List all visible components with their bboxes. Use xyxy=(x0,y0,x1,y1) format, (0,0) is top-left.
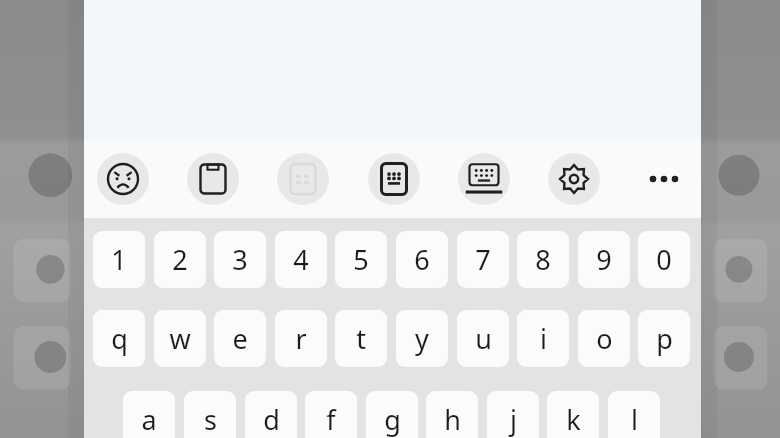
button[interactable]: q xyxy=(93,310,145,367)
staticText: p xyxy=(656,320,673,357)
button[interactable]: i xyxy=(517,310,569,367)
staticText: r xyxy=(295,320,307,357)
button[interactable]: More options xyxy=(638,153,690,205)
button[interactable]: d xyxy=(245,391,297,438)
staticText: h xyxy=(444,401,461,438)
button[interactable]: w xyxy=(154,310,206,367)
staticText: q xyxy=(111,320,128,357)
staticText: 6 xyxy=(414,241,430,278)
button[interactable]: j xyxy=(487,391,539,438)
button[interactable]: 5 xyxy=(335,231,387,288)
staticText: 3 xyxy=(232,241,248,278)
button[interactable]: 0 xyxy=(638,231,690,288)
staticText: o xyxy=(596,320,613,357)
button[interactable]: a xyxy=(123,391,175,438)
staticText: t xyxy=(356,320,366,357)
staticText: a xyxy=(141,401,157,438)
button[interactable]: 6 xyxy=(396,231,448,288)
staticText: g xyxy=(384,401,401,438)
button[interactable]: Clipboard xyxy=(187,153,239,205)
staticText: s xyxy=(204,401,217,438)
button[interactable]: h xyxy=(426,391,478,438)
button[interactable]: 8 xyxy=(517,231,569,288)
staticText: j xyxy=(510,401,517,438)
staticText: 4 xyxy=(293,241,309,278)
staticText: 5 xyxy=(353,241,369,278)
staticText: d xyxy=(263,401,280,438)
staticText: i xyxy=(540,320,547,357)
button[interactable]: f xyxy=(305,391,357,438)
staticText: 8 xyxy=(535,241,551,278)
button[interactable]: Translate xyxy=(277,153,329,205)
staticText: 2 xyxy=(172,241,188,278)
staticText: 1 xyxy=(111,241,127,278)
staticText: f xyxy=(326,401,336,438)
button[interactable]: 4 xyxy=(275,231,327,288)
button[interactable]: l xyxy=(608,391,660,438)
staticText: u xyxy=(475,320,492,357)
button[interactable]: g xyxy=(366,391,418,438)
button[interactable]: Keyboard mode xyxy=(458,153,510,205)
button[interactable]: 1 xyxy=(93,231,145,288)
button[interactable]: p xyxy=(638,310,690,367)
button[interactable]: 9 xyxy=(578,231,630,288)
button[interactable]: y xyxy=(396,310,448,367)
button[interactable]: Settings xyxy=(548,153,600,205)
staticText: e xyxy=(232,320,248,357)
button[interactable]: o xyxy=(578,310,630,367)
button[interactable]: k xyxy=(547,391,599,438)
staticText: l xyxy=(631,401,638,438)
staticText: k xyxy=(566,401,581,438)
staticText: 0 xyxy=(656,241,672,278)
button[interactable]: e xyxy=(214,310,266,367)
button[interactable]: s xyxy=(184,391,236,438)
button[interactable]: 3 xyxy=(214,231,266,288)
button[interactable]: r xyxy=(275,310,327,367)
staticText: 9 xyxy=(596,241,612,278)
button[interactable]: Stickers xyxy=(368,153,420,205)
button[interactable]: u xyxy=(457,310,509,367)
button[interactable]: 2 xyxy=(154,231,206,288)
staticText: w xyxy=(169,320,191,357)
button[interactable]: 7 xyxy=(457,231,509,288)
button[interactable]: Emoji xyxy=(97,153,149,205)
button[interactable]: t xyxy=(335,310,387,367)
staticText: 7 xyxy=(475,241,491,278)
staticText: y xyxy=(415,320,429,357)
